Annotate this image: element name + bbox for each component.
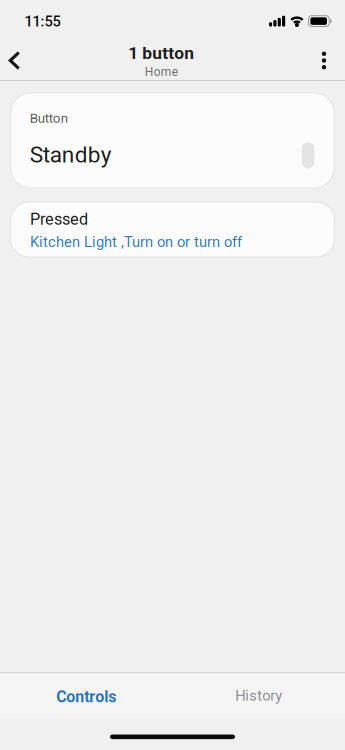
button[interactable]: History	[172, 673, 345, 718]
staticText: Standby	[30, 142, 112, 168]
button[interactable]: Back	[0, 41, 29, 80]
staticText: 11:55	[24, 13, 60, 30]
button[interactable]: More options	[303, 41, 345, 80]
button[interactable]: Button	[11, 93, 334, 188]
staticText: Home	[145, 65, 178, 79]
staticText: Pressed	[30, 210, 88, 229]
button[interactable]: Pressed	[11, 202, 334, 257]
staticText: History	[235, 687, 282, 704]
button[interactable]: Controls	[0, 673, 172, 718]
staticText: Button	[30, 110, 68, 126]
staticText: Controls	[56, 688, 116, 706]
staticText: 1 button	[128, 43, 194, 63]
staticText: Kitchen Light ,Turn on or turn off	[30, 234, 242, 250]
